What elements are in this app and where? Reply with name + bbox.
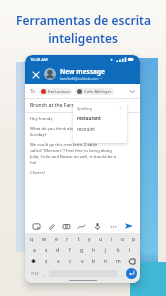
staticText: r bbox=[66, 236, 69, 243]
button[interactable]: n bbox=[100, 257, 112, 266]
button[interactable]: Close bbox=[30, 69, 41, 80]
button[interactable]: Voice bbox=[92, 221, 102, 231]
button[interactable]: u bbox=[95, 235, 106, 244]
staticText: n bbox=[104, 258, 108, 265]
button[interactable]: d bbox=[52, 246, 64, 255]
staticText: Julia, Colin and Baxter as well, it shou… bbox=[30, 154, 117, 160]
button[interactable]: t bbox=[73, 235, 84, 244]
staticText: Sunday? bbox=[30, 132, 47, 138]
staticText: g bbox=[80, 247, 84, 254]
button[interactable]: Send bbox=[124, 221, 134, 231]
button[interactable]: restaurant bbox=[77, 115, 101, 121]
staticText: o bbox=[121, 236, 125, 243]
button[interactable]: x bbox=[52, 257, 64, 266]
button[interactable]: Backspace bbox=[124, 257, 139, 266]
staticText: j bbox=[105, 247, 107, 254]
staticText: Ferramentas de escrita bbox=[16, 12, 151, 28]
button[interactable]: Brunch at the Farm bbox=[30, 99, 135, 112]
staticText: d bbox=[56, 247, 60, 254]
staticText: q bbox=[30, 236, 34, 243]
staticText: Kat Larsson bbox=[48, 89, 70, 94]
staticText: z bbox=[45, 258, 48, 265]
button[interactable]: g bbox=[76, 246, 88, 255]
button[interactable]: restraint bbox=[77, 126, 95, 132]
staticText: ?123 bbox=[31, 271, 39, 276]
staticText: i bbox=[111, 236, 113, 243]
button[interactable]: q bbox=[26, 235, 38, 244]
button[interactable]: r bbox=[62, 235, 73, 244]
staticText: To bbox=[30, 88, 35, 94]
staticText: e bbox=[55, 236, 58, 243]
button[interactable]: e bbox=[50, 235, 62, 244]
staticText: s bbox=[45, 247, 48, 254]
button[interactable]: Paperclip bbox=[46, 221, 56, 231]
staticText: What do you think about brunch on bbox=[30, 126, 101, 132]
button[interactable]: i bbox=[106, 235, 117, 244]
button[interactable]: o bbox=[117, 235, 128, 244]
button[interactable]: Colin Ballinger bbox=[77, 89, 112, 94]
button[interactable]: Camera bbox=[61, 221, 71, 231]
staticText: . bbox=[121, 271, 123, 277]
staticText: hit! bbox=[30, 160, 37, 166]
button[interactable]: . bbox=[118, 268, 126, 279]
staticText: w bbox=[42, 236, 46, 243]
staticText: called "Morsons"? Feel free to bring alo… bbox=[30, 148, 112, 154]
button[interactable]: f bbox=[64, 246, 76, 255]
staticText: 10:28 AM bbox=[30, 57, 48, 62]
staticText: c bbox=[69, 258, 72, 265]
button[interactable]: m bbox=[112, 257, 124, 266]
staticText: u bbox=[99, 236, 103, 243]
staticText: Colin Ballinger bbox=[84, 89, 112, 94]
staticText: Hey friends, bbox=[30, 116, 54, 122]
staticText: Cheers! bbox=[30, 170, 45, 176]
staticText: a bbox=[33, 247, 36, 254]
button[interactable]: w bbox=[38, 235, 50, 244]
button[interactable]: v bbox=[76, 257, 88, 266]
staticText: h bbox=[92, 247, 96, 254]
staticText: inteligentes bbox=[48, 30, 118, 46]
staticText: y bbox=[88, 236, 91, 243]
button[interactable]: , bbox=[41, 268, 49, 279]
staticText: b bbox=[92, 258, 96, 265]
staticText: p bbox=[132, 236, 136, 243]
button[interactable]: Shift bbox=[26, 257, 40, 266]
button[interactable]: z bbox=[40, 257, 52, 266]
button[interactable]: More options bbox=[108, 221, 118, 231]
staticText: x bbox=[57, 258, 60, 265]
staticText: Spelling bbox=[77, 106, 92, 111]
staticText: v bbox=[81, 258, 84, 265]
button[interactable]: h bbox=[88, 246, 100, 255]
staticText: , bbox=[44, 271, 46, 277]
button[interactable]: Signature bbox=[76, 221, 86, 231]
button[interactable]: To bbox=[30, 84, 135, 98]
button[interactable]: ?123 bbox=[28, 268, 41, 279]
staticText: New message bbox=[60, 67, 105, 76]
button[interactable]: y bbox=[84, 235, 95, 244]
staticText: f bbox=[69, 247, 71, 254]
button[interactable]: Attach file bbox=[31, 221, 41, 231]
button[interactable]: l bbox=[124, 246, 136, 255]
staticText: Brunch at the Farm bbox=[30, 102, 77, 109]
button[interactable]: a bbox=[29, 246, 40, 255]
button[interactable]: p bbox=[128, 235, 139, 244]
button[interactable]: Kat Larsson bbox=[41, 89, 70, 94]
button[interactable]: c bbox=[64, 257, 76, 266]
staticText: k bbox=[117, 247, 120, 254]
button[interactable]: b bbox=[88, 257, 100, 266]
button[interactable]: k bbox=[112, 246, 124, 255]
button[interactable]: Enter bbox=[126, 268, 137, 279]
staticText: We could go this new farm-2-table bbox=[30, 142, 98, 148]
button[interactable]: s bbox=[40, 246, 52, 255]
staticText: l bbox=[129, 247, 131, 254]
staticText: t bbox=[78, 236, 80, 243]
button[interactable]: j bbox=[100, 246, 112, 255]
staticText: kamilwilt@outlook.com ~ bbox=[60, 76, 103, 81]
staticText: ··· bbox=[119, 106, 123, 111]
staticText: m bbox=[116, 258, 121, 265]
button[interactable]: Account bbox=[44, 68, 56, 80]
